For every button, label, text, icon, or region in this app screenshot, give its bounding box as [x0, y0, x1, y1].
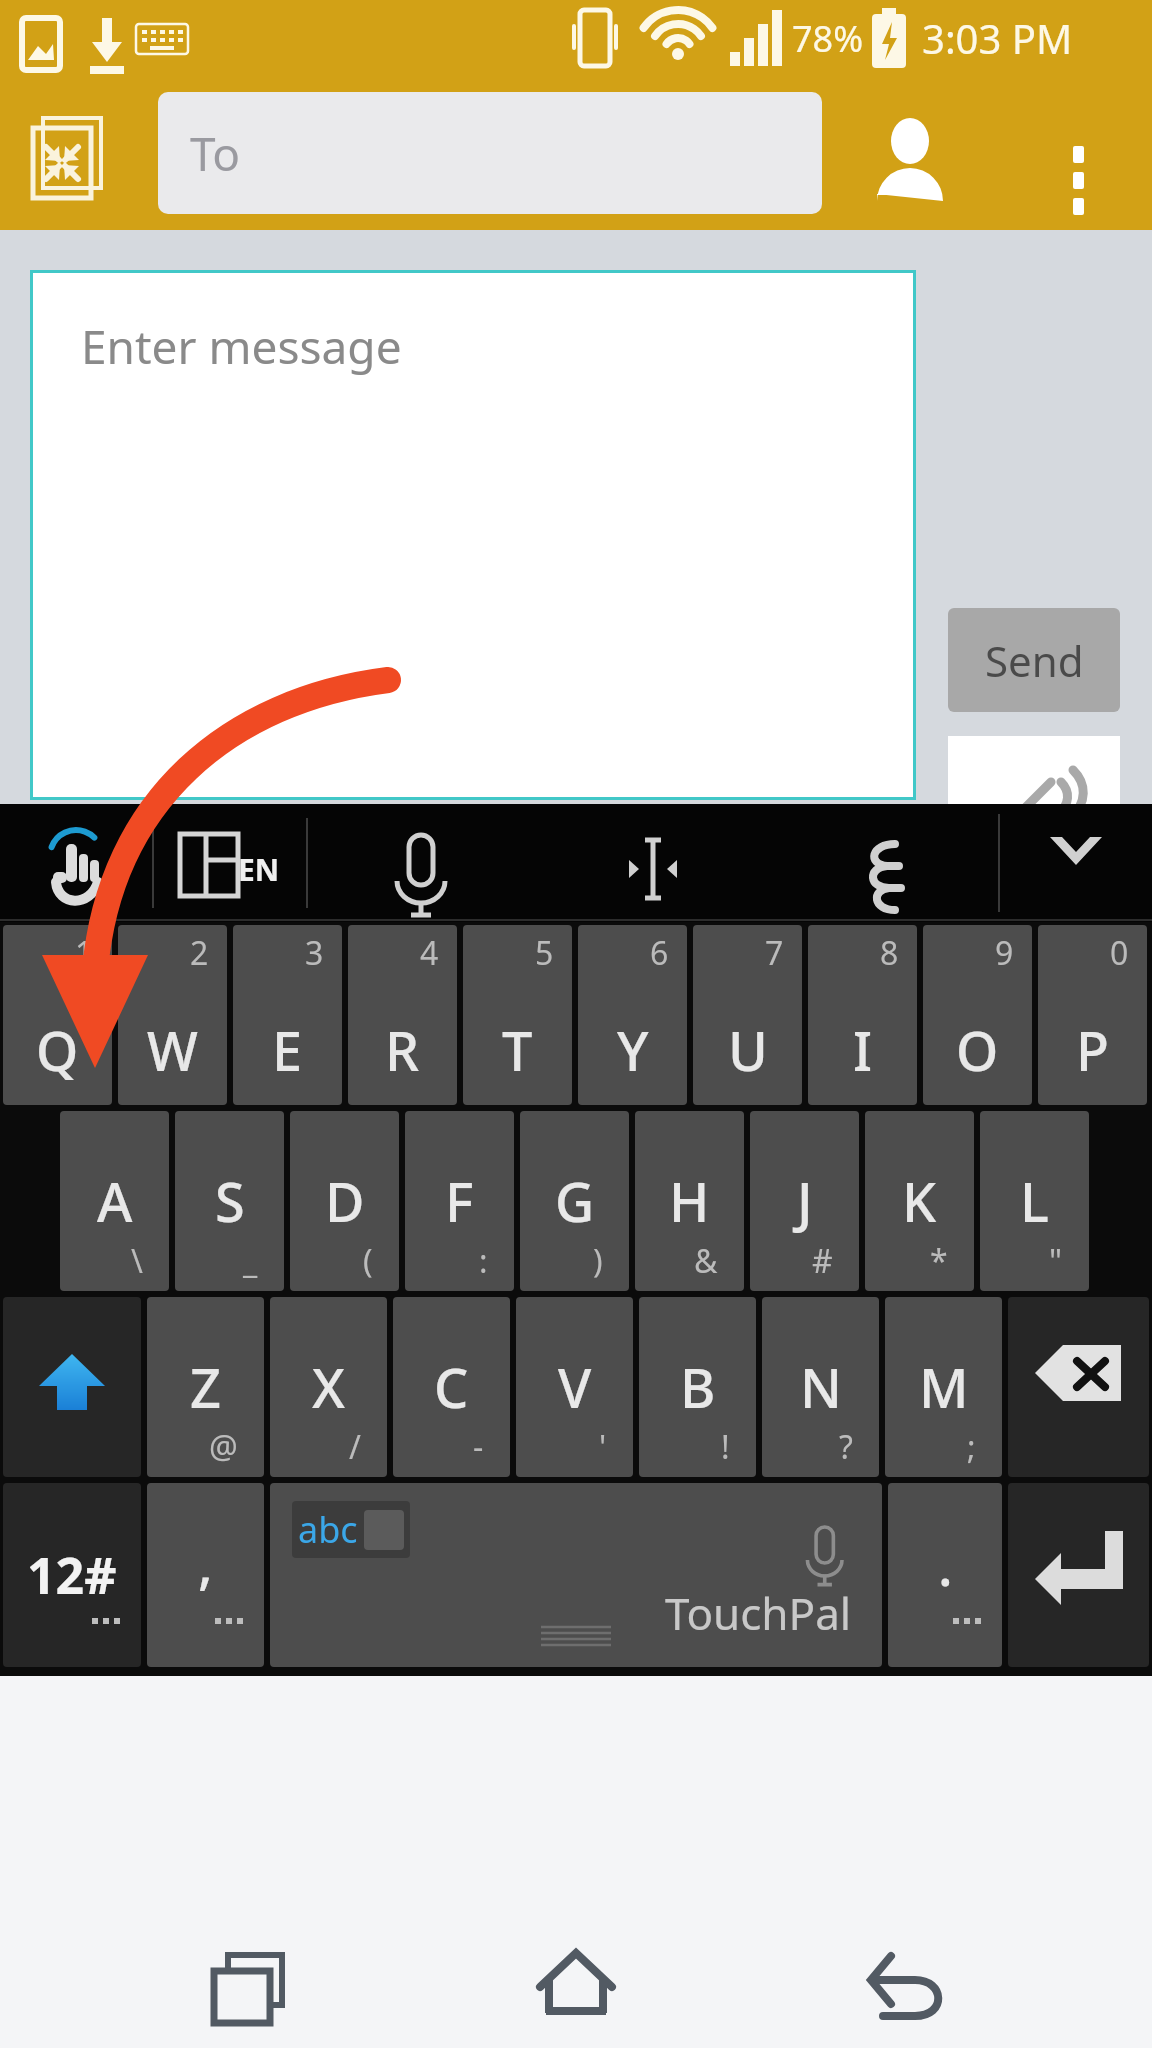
staticText: abc: [298, 1505, 358, 1554]
button[interactable]: Swipe input: [0, 804, 153, 922]
button[interactable]: D: [290, 1111, 399, 1291]
staticText: Send: [985, 632, 1084, 689]
button[interactable]: O: [923, 925, 1032, 1105]
staticText: U: [728, 1013, 768, 1087]
staticText: *: [930, 1239, 948, 1283]
button[interactable]: U: [693, 925, 802, 1105]
button[interactable]: Collapse: [22, 107, 114, 199]
staticText: _: [243, 1239, 258, 1283]
staticText: 3:03 PM: [922, 11, 1073, 65]
staticText: \: [131, 1239, 143, 1283]
staticText: @: [209, 1425, 238, 1469]
staticText: 3: [305, 931, 324, 975]
staticText: J: [797, 1164, 813, 1238]
button[interactable]: R: [348, 925, 457, 1105]
staticText: Q: [36, 1013, 79, 1087]
button[interactable]: To: [158, 92, 822, 214]
staticText: -: [473, 1425, 484, 1469]
button[interactable]: More options: [1030, 103, 1130, 203]
button[interactable]: Recents: [168, 1930, 328, 2048]
button[interactable]: L: [980, 1111, 1089, 1291]
button[interactable]: Enter message: [30, 270, 916, 800]
staticText: 12#: [27, 1541, 117, 1609]
button[interactable]: Hide keyboard: [999, 804, 1152, 922]
button[interactable]: ,: [147, 1483, 264, 1667]
staticText: I: [853, 1013, 873, 1087]
button[interactable]: Add contact: [850, 93, 970, 213]
staticText: ": [1049, 1239, 1063, 1283]
button[interactable]: S: [175, 1111, 284, 1291]
button[interactable]: M: [885, 1297, 1002, 1477]
button[interactable]: P: [1038, 925, 1147, 1105]
staticText: ): [593, 1239, 603, 1283]
staticText: EN: [238, 849, 280, 890]
button[interactable]: V: [516, 1297, 633, 1477]
button[interactable]: Enter: [1008, 1483, 1149, 1667]
button[interactable]: X: [270, 1297, 387, 1477]
staticText: ,: [198, 1526, 213, 1600]
staticText: W: [147, 1013, 198, 1087]
button[interactable]: T: [463, 925, 572, 1105]
staticText: 4: [420, 931, 439, 975]
staticText: V: [558, 1350, 592, 1424]
staticText: Z: [190, 1350, 221, 1424]
staticText: .: [938, 1528, 953, 1602]
staticText: 7: [765, 931, 784, 975]
staticText: K: [902, 1164, 937, 1238]
button[interactable]: I: [808, 925, 917, 1105]
staticText: (: [363, 1239, 373, 1283]
staticText: S: [215, 1164, 245, 1238]
button[interactable]: H: [635, 1111, 744, 1291]
button[interactable]: Z: [147, 1297, 264, 1477]
staticText: To: [190, 122, 241, 185]
button[interactable]: A: [60, 1111, 169, 1291]
button[interactable]: Attach: [948, 736, 1120, 804]
button[interactable]: E: [233, 925, 342, 1105]
button[interactable]: Space: [270, 1483, 882, 1667]
button[interactable]: Home: [496, 1930, 656, 2048]
staticText: R: [385, 1013, 420, 1087]
staticText: :: [479, 1239, 488, 1283]
staticText: C: [434, 1350, 469, 1424]
button[interactable]: Send: [948, 608, 1120, 712]
staticText: &: [694, 1239, 718, 1283]
staticText: 6: [650, 931, 669, 975]
staticText: Enter message: [81, 315, 402, 378]
staticText: /: [349, 1425, 361, 1469]
button[interactable]: F: [405, 1111, 514, 1291]
button[interactable]: Backspace: [1008, 1297, 1149, 1477]
button[interactable]: Shift: [3, 1297, 141, 1477]
staticText: Y: [617, 1013, 649, 1087]
staticText: 8: [880, 931, 899, 975]
staticText: 9: [995, 931, 1014, 975]
button[interactable]: K: [865, 1111, 974, 1291]
button[interactable]: 12#: [3, 1483, 141, 1667]
staticText: #: [812, 1239, 833, 1283]
button[interactable]: J: [750, 1111, 859, 1291]
button[interactable]: Y: [578, 925, 687, 1105]
staticText: H: [669, 1164, 710, 1238]
staticText: ?: [839, 1425, 853, 1469]
staticText: P: [1076, 1013, 1109, 1087]
staticText: 0: [1110, 931, 1129, 975]
staticText: X: [312, 1350, 345, 1424]
button[interactable]: C: [393, 1297, 510, 1477]
staticText: TouchPal: [665, 1583, 852, 1643]
button[interactable]: Q: [3, 925, 112, 1105]
button[interactable]: Language EN: [153, 804, 307, 922]
button[interactable]: B: [639, 1297, 756, 1477]
button[interactable]: Back: [824, 1930, 984, 2048]
button[interactable]: .: [888, 1483, 1002, 1667]
staticText: 78%: [792, 14, 864, 63]
staticText: !: [721, 1425, 730, 1469]
staticText: G: [555, 1164, 595, 1238]
button[interactable]: Emoji: [769, 804, 999, 922]
button[interactable]: Cursor control: [538, 804, 769, 922]
staticText: O: [956, 1013, 999, 1087]
staticText: N: [800, 1350, 842, 1424]
button[interactable]: N: [762, 1297, 879, 1477]
button[interactable]: Voice input: [307, 804, 538, 922]
staticText: E: [272, 1013, 303, 1087]
button[interactable]: G: [520, 1111, 629, 1291]
button[interactable]: W: [118, 925, 227, 1105]
